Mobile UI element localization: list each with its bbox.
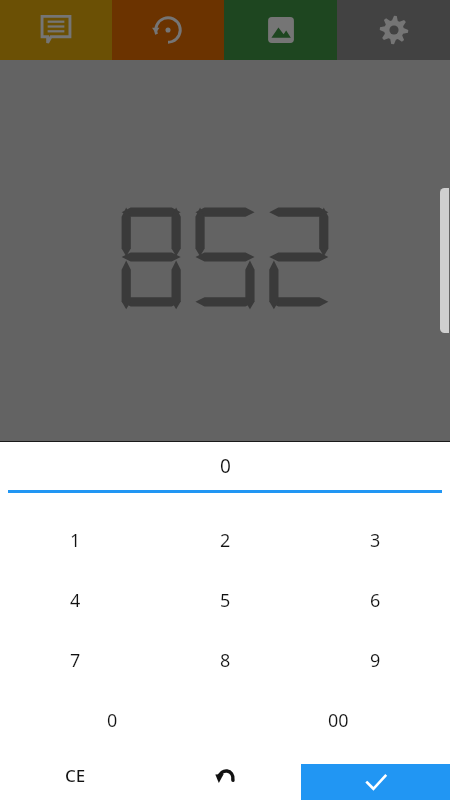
staticText: 4	[70, 588, 81, 613]
button[interactable]: 8	[150, 630, 300, 690]
button[interactable]: 3	[300, 510, 450, 570]
button[interactable]: 2	[150, 510, 300, 570]
button[interactable]: Settings	[337, 0, 450, 60]
button[interactable]: 0	[0, 690, 150, 750]
staticText: 0	[107, 708, 118, 733]
button[interactable]: 6	[300, 570, 450, 630]
button[interactable]: Photos	[224, 0, 337, 60]
staticText: CE	[65, 764, 86, 787]
staticText: 7	[70, 648, 81, 673]
staticText: 1	[70, 528, 81, 553]
button[interactable]: 00	[300, 690, 450, 750]
staticText: 9	[370, 648, 381, 673]
staticText: 00	[328, 708, 349, 733]
button[interactable]: 7	[0, 630, 150, 690]
button[interactable]: Undo	[150, 750, 300, 800]
button[interactable]: 9	[300, 630, 450, 690]
button[interactable]: Confirm	[301, 764, 450, 800]
staticText: 8	[220, 648, 231, 673]
staticText: 5	[220, 588, 231, 613]
staticText: 0	[220, 453, 231, 479]
button[interactable]: 1	[0, 510, 150, 570]
button[interactable]: 4	[0, 570, 150, 630]
staticText: 6	[370, 588, 381, 613]
button[interactable]: History	[112, 0, 224, 60]
staticText: 2	[220, 528, 231, 553]
staticText: 3	[370, 528, 381, 553]
button[interactable]: 5	[150, 570, 300, 630]
button[interactable]: Messages	[0, 0, 112, 60]
button[interactable]: CE	[0, 750, 150, 800]
